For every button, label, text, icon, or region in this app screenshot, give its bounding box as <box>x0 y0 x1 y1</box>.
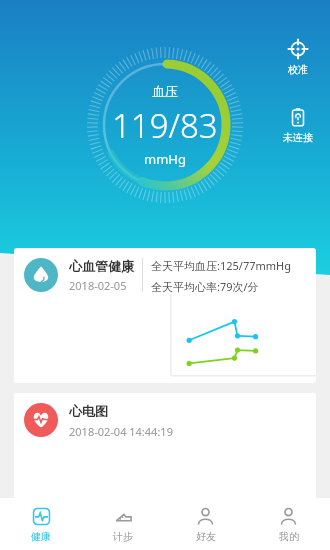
staticText: 未连接 <box>283 131 313 144</box>
staticText: 心电图 <box>69 403 108 419</box>
button[interactable]: 未连接 <box>276 104 320 146</box>
staticText: 2018-02-04 14:44:19 <box>69 424 173 439</box>
button[interactable]: 我的 <box>247 498 330 550</box>
staticText: 计步 <box>113 530 133 543</box>
button[interactable]: 校准 <box>276 36 320 78</box>
staticText: 全天平均血压:125/77mmHg <box>151 258 291 273</box>
staticText: 全天平均心率:79次/分 <box>151 279 259 294</box>
button[interactable]: 计步 <box>82 498 164 550</box>
staticText: mmHg <box>144 150 186 168</box>
staticText: 血压 <box>152 83 178 99</box>
staticText: 119/83 <box>112 103 218 148</box>
staticText: 心血管健康 <box>69 258 134 274</box>
staticText: 好友 <box>196 530 216 543</box>
staticText: 健康 <box>31 530 51 543</box>
button[interactable]: 心电图 <box>14 393 316 513</box>
button[interactable]: 心血管健康 <box>14 248 316 383</box>
staticText: 我的 <box>279 530 299 543</box>
button[interactable]: 健康 <box>0 498 82 550</box>
staticText: 校准 <box>288 63 308 76</box>
staticText: 2018-02-05 <box>69 278 127 293</box>
button[interactable]: 好友 <box>164 498 247 550</box>
